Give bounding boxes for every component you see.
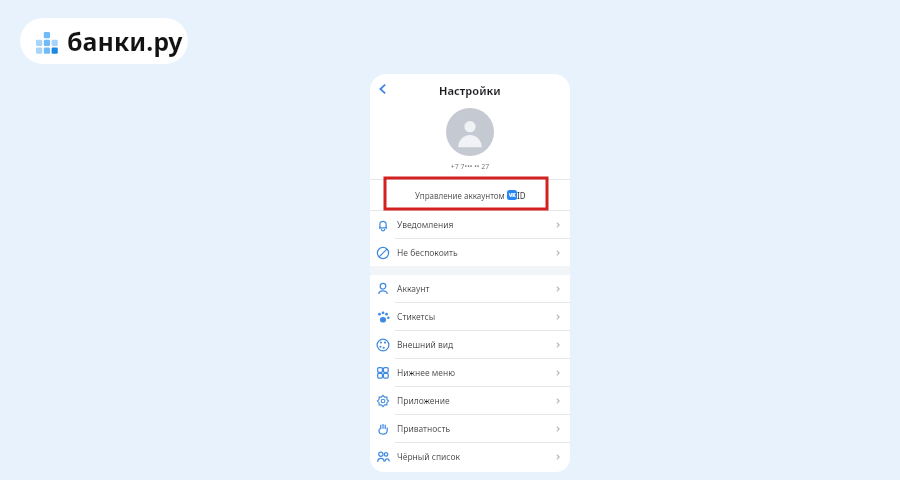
staticText: Нижнее меню: [397, 367, 456, 379]
button[interactable]: Приватность: [370, 415, 570, 442]
button[interactable]: Приложение: [370, 387, 570, 414]
staticText: Приложение: [397, 395, 450, 407]
button[interactable]: Уведомления: [370, 211, 570, 238]
staticText: банки.ру: [67, 24, 183, 58]
button[interactable]: Не беспокоить: [370, 239, 570, 266]
button[interactable]: Внешний вид: [370, 331, 570, 358]
button[interactable]: Чёрный список: [370, 443, 570, 470]
button[interactable]: Нижнее меню: [370, 359, 570, 386]
staticText: +7 7••• •• 27: [370, 162, 570, 172]
staticText: Чёрный список: [397, 451, 461, 463]
staticText: Стикетсы: [397, 311, 436, 323]
staticText: Приватность: [397, 423, 451, 435]
staticText: ID: [517, 190, 526, 201]
button[interactable]: Back: [372, 78, 394, 100]
button[interactable]: Стикетсы: [370, 303, 570, 330]
staticText: Аккаунт: [397, 283, 430, 295]
staticText: Не беспокоить: [397, 247, 458, 259]
staticText: VK: [509, 192, 516, 199]
button[interactable]: Аккаунт: [370, 275, 570, 302]
staticText: Управление аккаунтом: [415, 190, 507, 201]
button[interactable]: Управление аккаунтом: [370, 180, 570, 210]
button[interactable]: banki.ru: [20, 18, 188, 64]
staticText: Настройки: [439, 83, 501, 98]
staticText: Внешний вид: [397, 339, 454, 351]
staticText: Уведомления: [397, 219, 454, 231]
